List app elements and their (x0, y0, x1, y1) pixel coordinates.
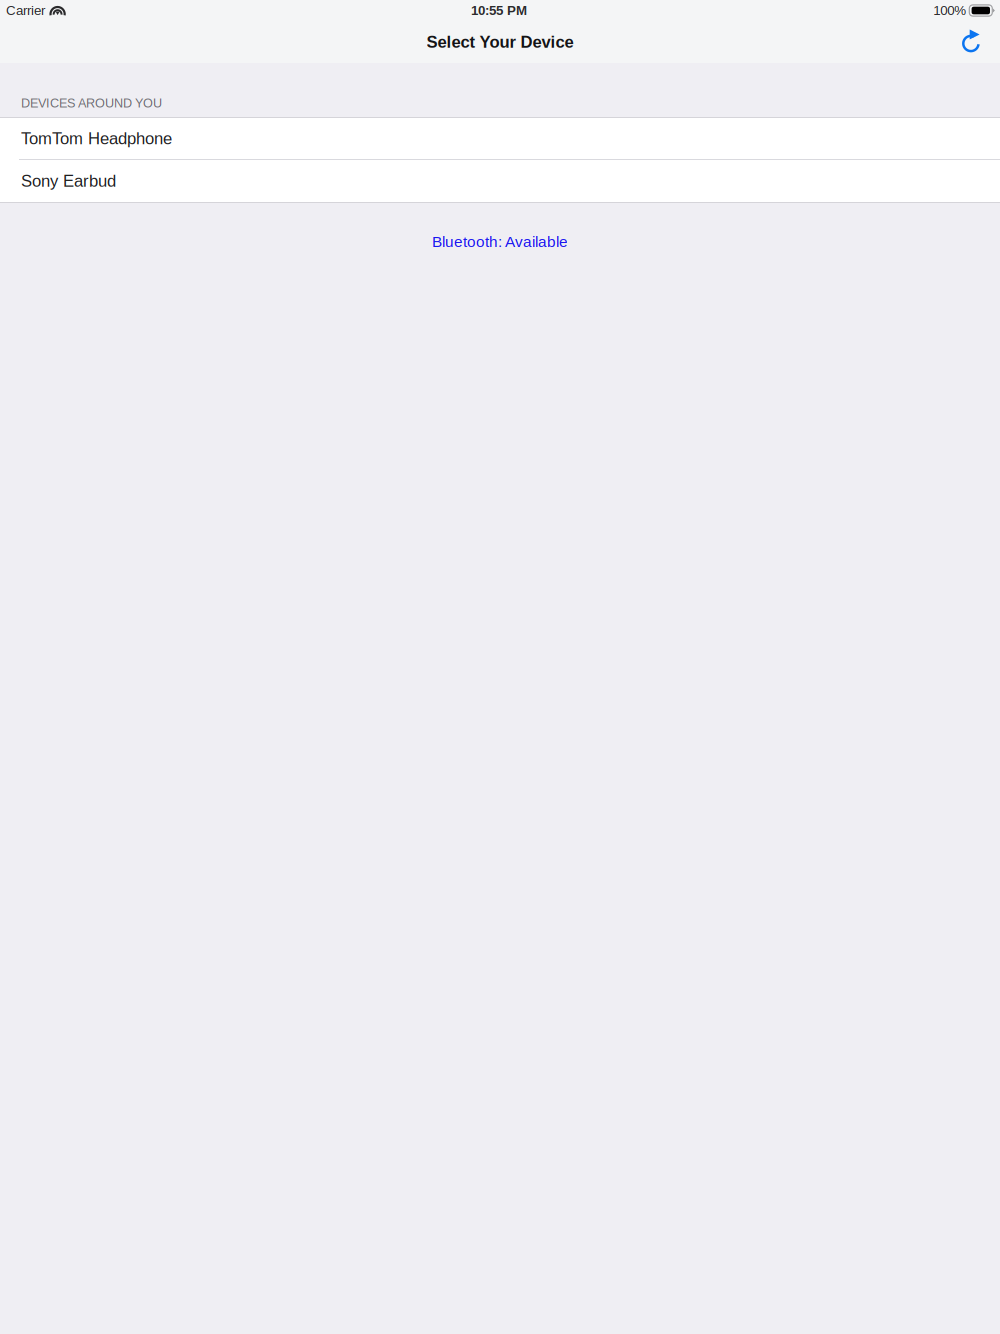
staticText: Select Your Device (426, 33, 573, 51)
staticText: TomTom Headphone (21, 129, 172, 148)
button[interactable]: TomTom Headphone (0, 118, 1000, 160)
button[interactable]: Bluetooth: Available (412, 203, 588, 258)
staticText: Carrier (6, 3, 45, 18)
staticText: DEVICES AROUND YOU (21, 96, 162, 110)
staticText: Bluetooth: Available (432, 233, 568, 250)
staticText: Sony Earbud (21, 172, 116, 190)
button[interactable]: Refresh (947, 21, 1000, 62)
staticText: 10:55 PM (471, 3, 527, 18)
staticText: 100% (933, 3, 966, 18)
button[interactable]: Sony Earbud (0, 160, 1000, 202)
